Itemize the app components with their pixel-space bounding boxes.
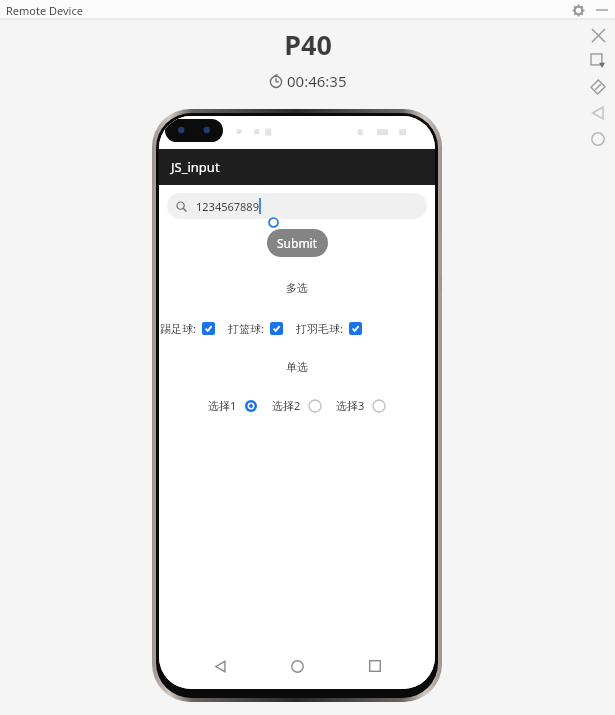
staticText: 选择3 <box>336 398 365 413</box>
staticText: 踢足球: <box>160 321 196 336</box>
staticText: 1234567889 <box>196 199 259 214</box>
button[interactable]: 打篮球: <box>228 321 283 336</box>
staticText: Submit <box>277 235 318 251</box>
staticText: 打羽毛球: <box>296 321 343 336</box>
button[interactable]: JS_input <box>159 149 435 185</box>
button[interactable]: Settings <box>569 1 587 19</box>
button[interactable]: Close <box>585 22 611 48</box>
staticText: JS_input <box>171 158 220 176</box>
staticText: 选择2 <box>272 398 301 413</box>
staticText: 选择1 <box>208 398 237 413</box>
staticText: Remote Device <box>6 3 83 18</box>
button[interactable]: Back <box>203 649 237 683</box>
button[interactable]: 踢足球: <box>160 321 215 336</box>
button[interactable]: Rotate <box>585 74 611 100</box>
button[interactable]: 打羽毛球: <box>296 321 362 336</box>
button[interactable]: Resize <box>585 48 611 74</box>
button[interactable]: 选择3 <box>336 398 386 413</box>
button[interactable]: Back <box>585 100 611 126</box>
button[interactable]: 选择2 <box>272 398 322 413</box>
button[interactable]: Submit <box>267 229 328 257</box>
staticText: 多选 <box>159 281 435 295</box>
staticText: 单选 <box>159 360 435 374</box>
button[interactable]: 选择1 <box>208 398 258 413</box>
button[interactable]: Home <box>280 649 314 683</box>
staticText: 00:46:35 <box>287 71 347 91</box>
button[interactable]: Home <box>585 126 611 152</box>
staticText: 打篮球: <box>228 321 264 336</box>
button[interactable]: Recents <box>358 649 392 683</box>
staticText: P40 <box>284 26 332 63</box>
button[interactable]: 1234567889 <box>167 193 427 219</box>
button[interactable]: Minimize <box>593 1 611 19</box>
